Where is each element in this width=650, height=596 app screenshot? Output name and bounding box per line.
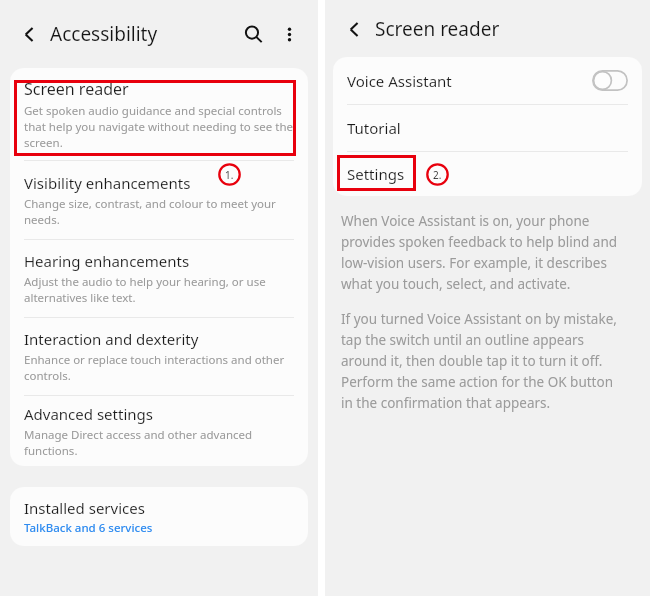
staticText: Voice Assistant (347, 71, 592, 91)
staticText: Screen reader (375, 16, 500, 42)
staticText: Settings (347, 164, 405, 184)
button[interactable]: Visibility enhancements (10, 161, 308, 239)
staticText: Advanced settings (24, 404, 153, 424)
button[interactable]: More options (272, 17, 306, 51)
staticText: Tutorial (347, 118, 401, 138)
staticText: Change size, contrast, and colour to mee… (24, 196, 276, 228)
button[interactable]: Search (236, 17, 270, 51)
staticText: Interaction and dexterity (24, 329, 199, 349)
button[interactable]: Back (12, 17, 46, 51)
button[interactable]: Back (337, 12, 371, 46)
staticText: Get spoken audio guidance and special co… (24, 103, 293, 151)
button[interactable]: Interaction and dexterity (10, 318, 308, 395)
button[interactable]: Installed services (10, 487, 308, 546)
button[interactable]: Advanced settings (10, 396, 308, 466)
button[interactable]: Voice Assistant toggle, off (592, 70, 628, 91)
staticText: TalkBack and 6 services (24, 520, 153, 536)
staticText: Hearing enhancements (24, 251, 190, 271)
button[interactable]: Settings (333, 152, 642, 196)
staticText: Manage Direct access and other advanced … (24, 427, 253, 459)
staticText: Installed services (24, 498, 145, 518)
staticText: Screen reader (24, 78, 129, 100)
button[interactable]: Tutorial (333, 105, 642, 151)
button[interactable]: Voice Assistant (333, 57, 642, 104)
staticText: If you turned Voice Assistant on by mist… (341, 310, 617, 412)
staticText: Visibility enhancements (24, 173, 191, 193)
staticText: Adjust the audio to help your hearing, o… (24, 274, 266, 306)
button[interactable]: Screen reader (10, 68, 308, 160)
staticText: 2. (433, 168, 442, 182)
staticText: Enhance or replace touch interactions an… (24, 352, 285, 384)
staticText: 1. (225, 168, 234, 182)
staticText: When Voice Assistant is on, your phone p… (341, 212, 618, 293)
button[interactable]: Hearing enhancements (10, 240, 308, 317)
staticText: Accessibility (50, 21, 158, 47)
